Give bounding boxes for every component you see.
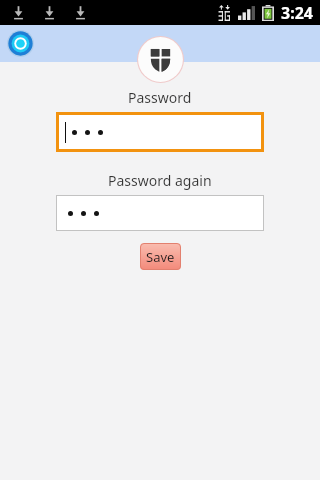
staticText: 3:24 bbox=[281, 2, 313, 24]
staticText: Save bbox=[146, 248, 175, 266]
button[interactable]: Save bbox=[140, 243, 181, 270]
button[interactable] bbox=[56, 112, 264, 152]
staticText: Password again bbox=[108, 171, 212, 190]
button[interactable]: App home bbox=[7, 30, 34, 57]
button[interactable] bbox=[56, 195, 264, 231]
staticText: Password bbox=[128, 88, 192, 107]
